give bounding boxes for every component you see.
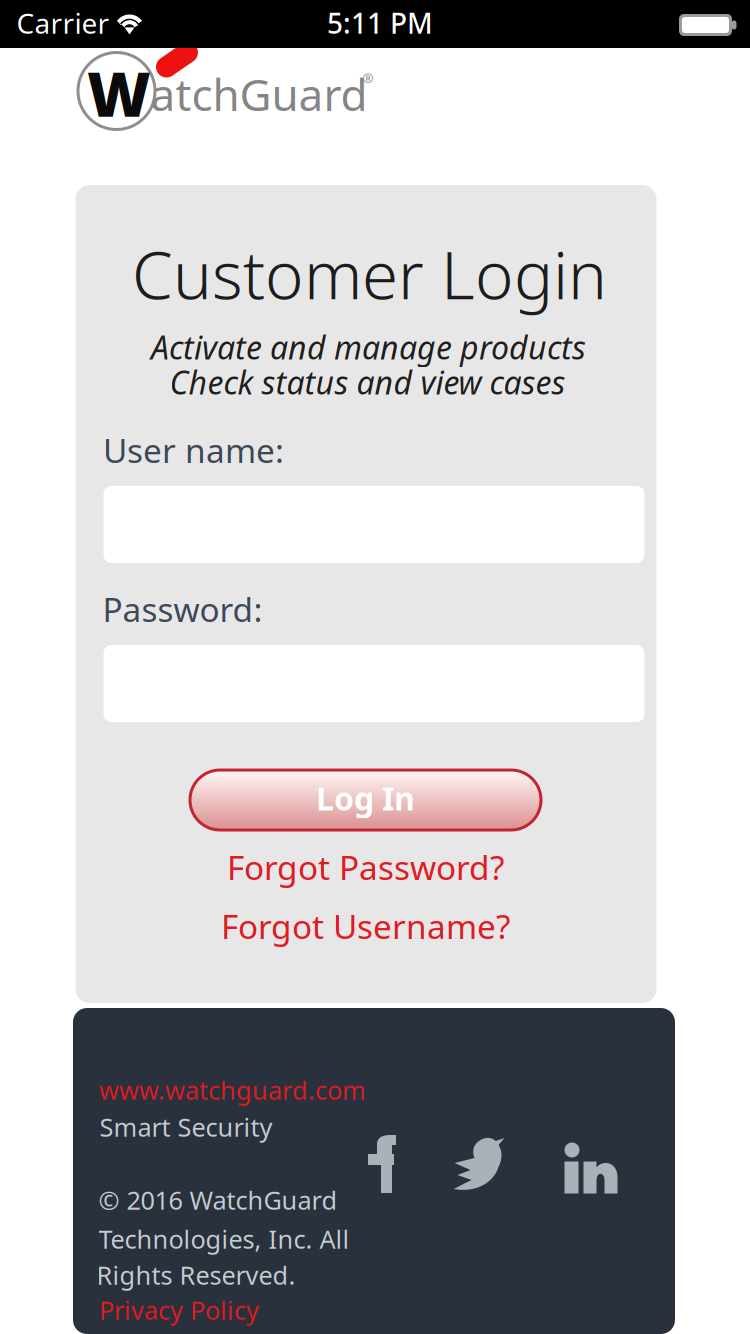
staticText: Password: [102, 587, 262, 631]
staticText: www.watchguard.com [99, 1073, 366, 1107]
staticText: Check status and view cases [169, 361, 565, 403]
staticText: atchGuard [150, 65, 367, 123]
staticText: Privacy Policy [99, 1293, 259, 1327]
button[interactable]: Log In [190, 770, 541, 830]
staticText: © 2016 WatchGuard [98, 1183, 337, 1217]
staticText: User name: [103, 428, 284, 472]
button[interactable]: Forgot Username? [215, 903, 515, 949]
staticText: ® [362, 69, 373, 87]
button[interactable]: Privacy Policy [99, 1293, 265, 1327]
staticText: Smart Security [99, 1110, 272, 1144]
button[interactable]: Twitter [453, 1137, 504, 1191]
staticText: Forgot Username? [221, 904, 510, 948]
button[interactable]: Facebook [368, 1135, 396, 1193]
staticText: Forgot Password? [227, 845, 504, 889]
staticText: Technologies, Inc. All [98, 1222, 349, 1256]
button[interactable]: www.watchguard.com [99, 1073, 371, 1107]
staticText: Carrier [16, 4, 109, 42]
button[interactable]: LinkedIn [564, 1142, 617, 1193]
staticText: W [87, 52, 151, 134]
staticText: 5:11 PM [327, 4, 433, 42]
button[interactable]: Forgot Password? [215, 844, 515, 890]
staticText: Log In [316, 777, 415, 819]
staticText: Activate and manage products [151, 326, 586, 368]
staticText: Customer Login [132, 231, 607, 317]
staticText: Rights Reserved. [96, 1258, 295, 1292]
